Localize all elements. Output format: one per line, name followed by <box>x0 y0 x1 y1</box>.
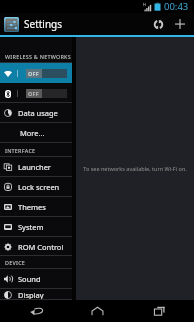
button[interactable]: Sync <box>147 13 169 35</box>
button[interactable]: Bluetooth <box>0 83 72 103</box>
button[interactable]: Back <box>10 300 62 322</box>
staticText: WIRELESS & NETWORKS <box>5 53 71 60</box>
button[interactable]: Sound <box>0 269 72 289</box>
staticText: OFF <box>28 70 40 77</box>
staticText: Launcher <box>18 162 51 172</box>
button[interactable]: Home <box>71 300 123 322</box>
staticText: ROM Control <box>18 242 64 252</box>
staticText: Lock screen <box>18 182 60 192</box>
button[interactable]: Launcher <box>0 157 72 177</box>
button[interactable]: Wi-Fi <box>0 63 72 83</box>
staticText: Themes <box>18 202 46 212</box>
button[interactable]: Themes <box>0 197 72 217</box>
staticText: DEVICE <box>5 259 26 266</box>
staticText: More... <box>20 128 45 138</box>
staticText: OFF <box>28 90 40 97</box>
button[interactable]: Lock screen <box>0 177 72 197</box>
staticText: Display <box>18 290 44 300</box>
button[interactable]: Settings <box>0 13 67 35</box>
button[interactable]: Add <box>169 13 191 35</box>
staticText: 00:43 <box>164 0 189 13</box>
staticText: To see networks available, turn Wi-Fi on… <box>83 165 187 172</box>
button[interactable]: More... <box>0 123 72 143</box>
button[interactable]: Data usage <box>0 103 72 123</box>
button[interactable]: Display <box>0 289 72 300</box>
staticText: System <box>18 222 44 232</box>
staticText: Data usage <box>18 108 58 118</box>
staticText: Settings <box>24 17 63 31</box>
staticText: Sound <box>18 274 41 284</box>
button[interactable]: Recents <box>133 300 185 322</box>
button[interactable]: System <box>0 217 72 237</box>
staticText: INTERFACE <box>5 147 36 154</box>
button[interactable]: ROM Control <box>0 237 72 256</box>
